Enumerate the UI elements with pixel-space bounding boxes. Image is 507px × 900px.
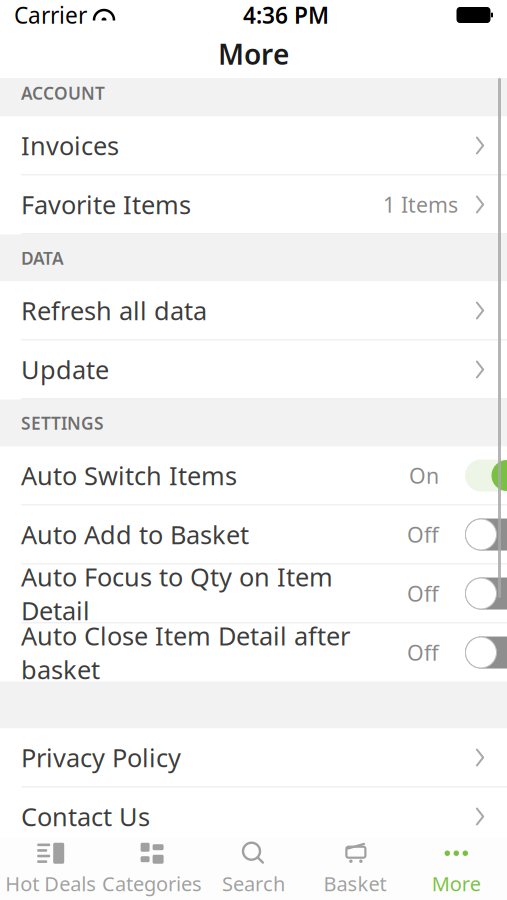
- staticText: DATA: [21, 246, 64, 269]
- staticText: ACCOUNT: [21, 81, 105, 104]
- button[interactable]: More: [406, 838, 507, 900]
- button[interactable]: Privacy Policy: [0, 728, 507, 787]
- button[interactable]: Favorite Items: [0, 175, 507, 234]
- staticText: Contact Us: [21, 800, 150, 833]
- staticText: Off: [407, 638, 439, 667]
- staticText: Off: [407, 579, 439, 608]
- button[interactable]: Update: [0, 340, 507, 399]
- staticText: Auto Switch Items: [21, 459, 237, 492]
- button[interactable]: Invoices: [0, 116, 507, 175]
- staticText: Carrier: [14, 0, 87, 30]
- staticText: Basket: [323, 870, 386, 897]
- staticText: Privacy Policy: [21, 741, 181, 774]
- staticText: 1 Items: [383, 190, 458, 219]
- staticText: 4:36 PM: [243, 0, 329, 30]
- staticText: Invoices: [21, 129, 119, 162]
- staticText: SETTINGS: [21, 411, 104, 434]
- button[interactable]: Basket: [304, 838, 406, 900]
- staticText: More: [218, 35, 289, 73]
- staticText: Search: [222, 870, 285, 897]
- staticText: On: [409, 461, 439, 490]
- staticText: Update: [21, 353, 109, 386]
- staticText: Auto Close Item Detail after basket: [21, 619, 350, 686]
- button[interactable]: Hot Deals: [0, 838, 101, 900]
- button[interactable]: Contact Us: [0, 787, 507, 846]
- staticText: Auto Add to Basket: [21, 518, 249, 551]
- button[interactable]: Search: [203, 838, 304, 900]
- staticText: Hot Deals: [5, 870, 96, 897]
- button[interactable]: Refresh all data: [0, 281, 507, 340]
- staticText: Refresh all data: [21, 294, 207, 327]
- staticText: Favorite Items: [21, 188, 191, 221]
- button[interactable]: Auto Add to Basket: [0, 505, 507, 564]
- staticText: Categories: [102, 870, 202, 897]
- button[interactable]: Auto Focus to Qty on Item Detail: [0, 564, 507, 623]
- staticText: Off: [407, 520, 439, 549]
- button[interactable]: Categories: [101, 838, 203, 900]
- button[interactable]: Auto Switch Items: [0, 446, 507, 505]
- staticText: More: [432, 870, 481, 897]
- button[interactable]: Auto Close Item Detail after basket: [0, 623, 507, 681]
- staticText: Auto Focus to Qty on Item Detail: [21, 560, 333, 627]
